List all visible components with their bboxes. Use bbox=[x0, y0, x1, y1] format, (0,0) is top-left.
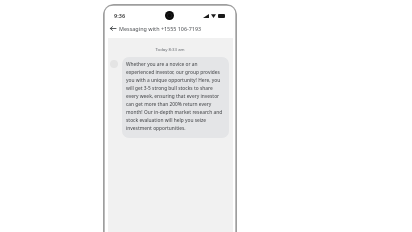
button[interactable]: Back bbox=[107, 22, 119, 34]
staticText: Today 8:33 am bbox=[103, 46, 237, 52]
button[interactable]: Whether you are a novice or an experienc… bbox=[122, 57, 229, 138]
button[interactable]: Sender avatar bbox=[110, 60, 118, 68]
staticText: 9:36 bbox=[114, 12, 126, 20]
button[interactable]: Messaging with +1555 106-7193 bbox=[118, 22, 228, 34]
staticText: Whether you are a novice or an experienc… bbox=[126, 61, 224, 132]
staticText: Messaging with +1555 106-7193 bbox=[119, 25, 202, 32]
